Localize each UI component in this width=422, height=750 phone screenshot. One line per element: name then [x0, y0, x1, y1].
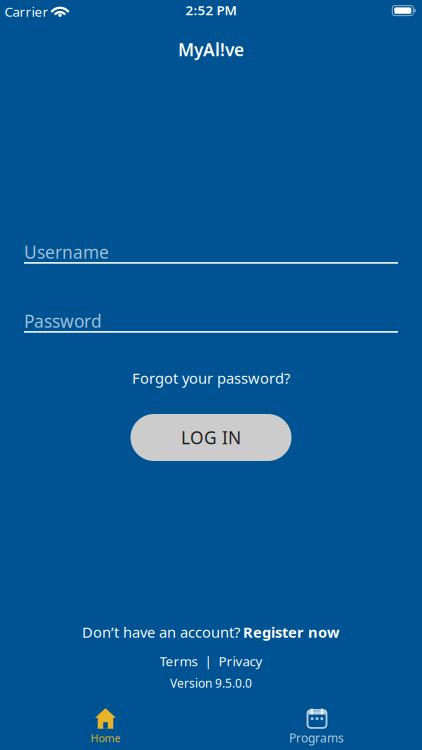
- button[interactable]: Don’t have an account?: [82, 622, 340, 642]
- staticText: Password: [24, 309, 102, 332]
- staticText: Version 9.5.0.0: [170, 675, 252, 691]
- staticText: Username: [24, 240, 109, 263]
- button[interactable]: Terms: [159, 652, 197, 670]
- staticText: Programs: [289, 730, 344, 746]
- button[interactable]: Password: [24, 303, 398, 339]
- button[interactable]: LOG IN: [130, 414, 291, 461]
- button[interactable]: Home: [0, 700, 211, 750]
- button[interactable]: Username: [24, 234, 398, 270]
- staticText: MyAl!ve: [178, 38, 244, 61]
- staticText: LOG IN: [181, 426, 241, 449]
- staticText: Home: [90, 731, 120, 745]
- button[interactable]: Programs: [211, 700, 422, 750]
- staticText: Terms: [159, 652, 197, 670]
- button[interactable]: Privacy: [218, 652, 262, 670]
- staticText: Don’t have an account?: [82, 622, 240, 642]
- staticText: Register now: [243, 622, 340, 642]
- staticText: |: [204, 652, 211, 670]
- button[interactable]: Forgot your password?: [132, 368, 290, 388]
- staticText: Carrier: [4, 3, 48, 20]
- staticText: 2:52 PM: [185, 1, 236, 19]
- staticText: Forgot your password?: [132, 368, 290, 388]
- staticText: Privacy: [218, 652, 262, 670]
